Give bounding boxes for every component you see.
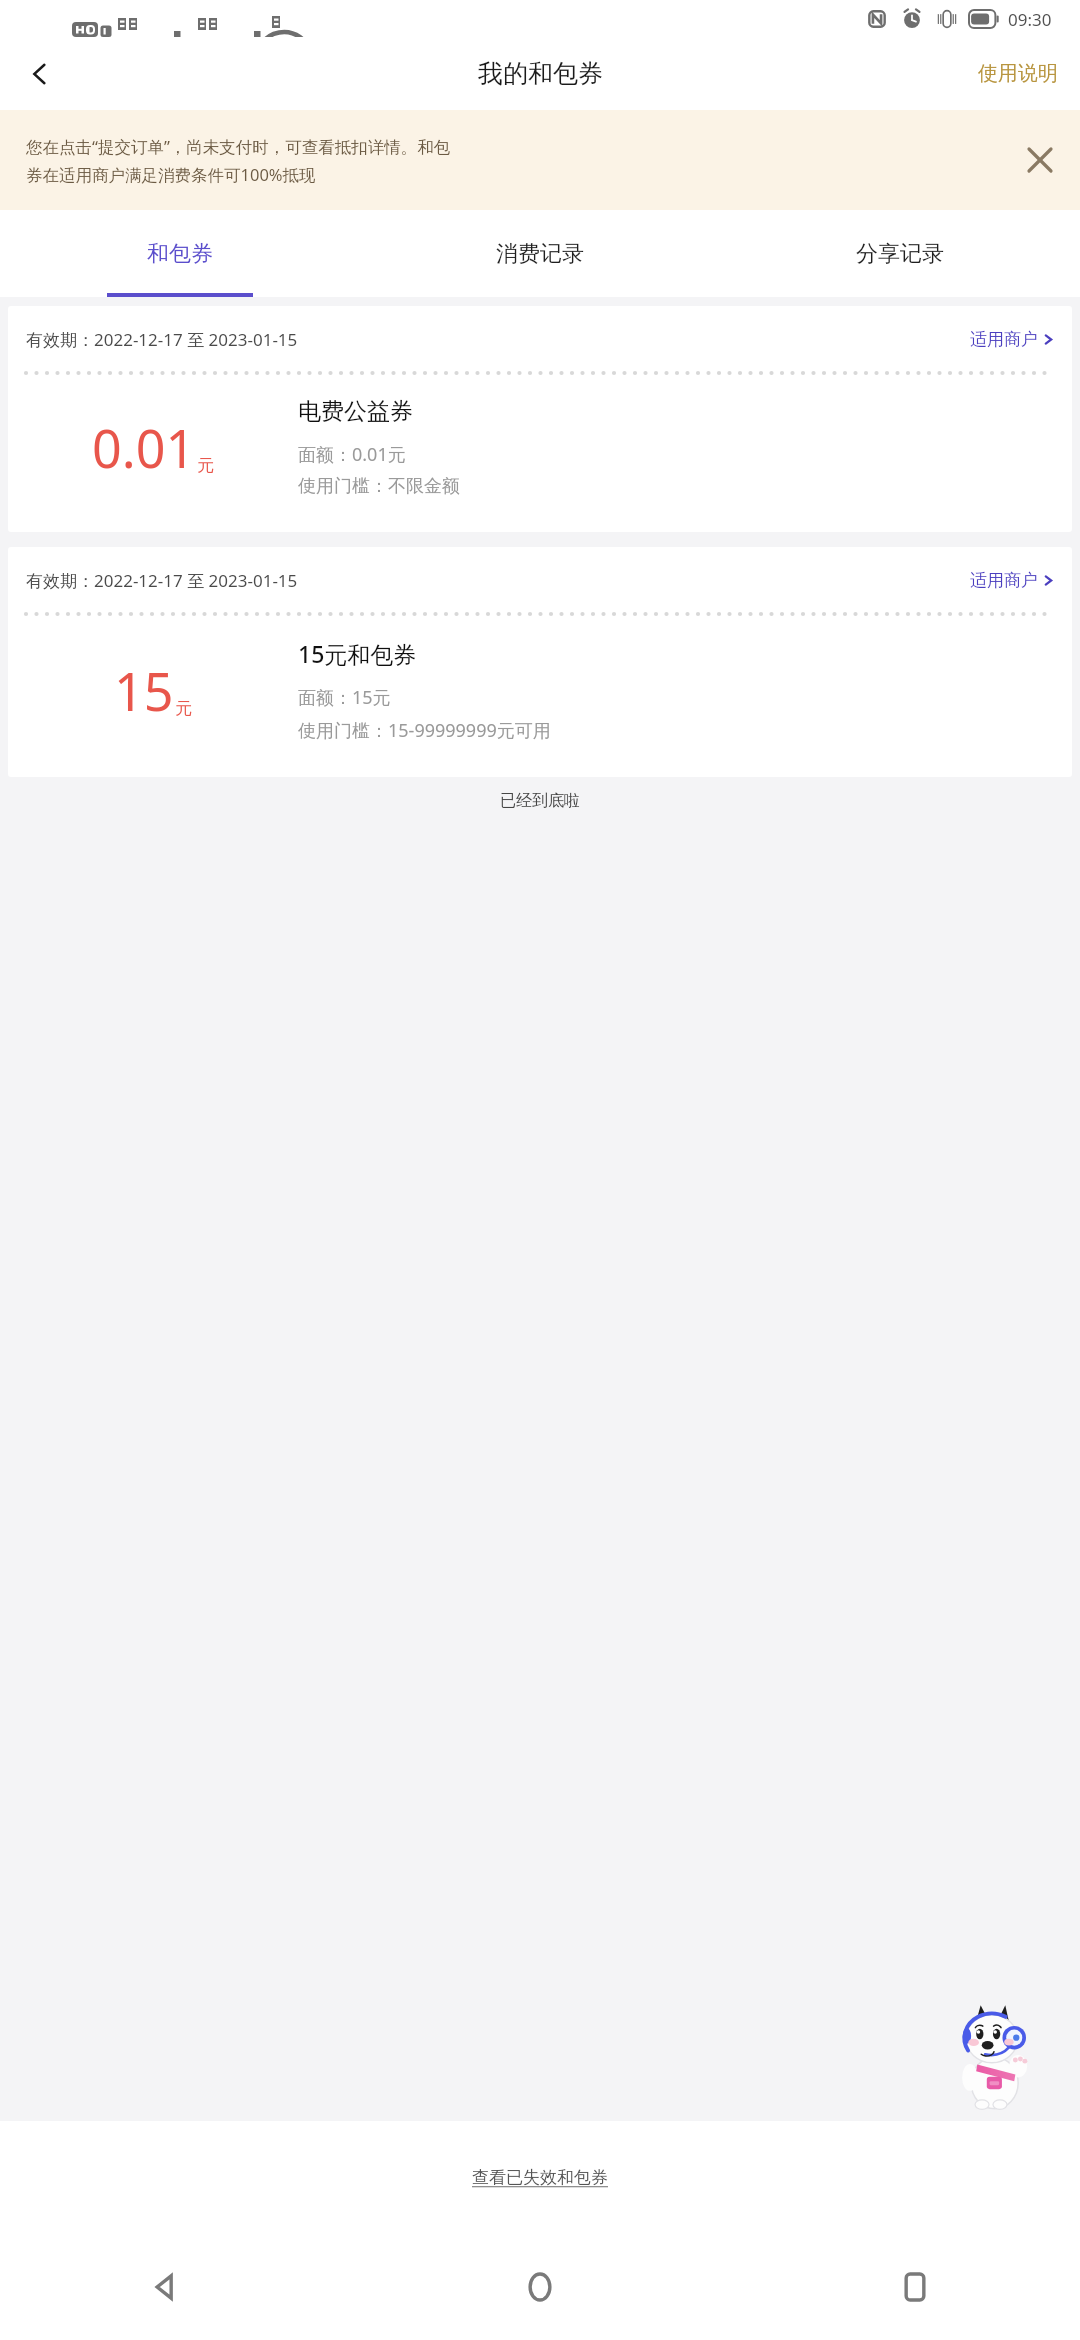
button[interactable]: 主页 (505, 2252, 575, 2322)
staticText: 消费记录 (496, 240, 584, 268)
staticText: 元 (197, 455, 214, 476)
staticText: 已经到底啦 (0, 791, 1080, 811)
staticText: 面额：0.01元 (298, 442, 406, 467)
button[interactable]: 使用说明 (956, 49, 1080, 98)
button[interactable]: 关闭 (1016, 136, 1064, 184)
staticText: 分享记录 (856, 240, 944, 268)
staticText: 我的和包券 (478, 58, 603, 89)
button[interactable]: 适用商户 (970, 570, 1054, 591)
button[interactable]: 返回 (12, 46, 68, 102)
button[interactable]: 消费记录 (360, 210, 720, 297)
button[interactable]: 适用商户 (970, 329, 1054, 350)
staticText: 适用商户 (970, 329, 1038, 350)
button[interactable]: 和包券 (0, 210, 360, 297)
button[interactable]: 返回 (130, 2252, 200, 2322)
staticText: 券在适用商户满足消费条件可100%抵现 (26, 163, 316, 186)
staticText: 电费公益券 (298, 397, 413, 426)
staticText: 使用说明 (978, 61, 1058, 86)
staticText: 使用门槛：不限金额 (298, 475, 460, 498)
staticText: 和包券 (147, 240, 213, 268)
staticText: 元 (175, 698, 192, 719)
button[interactable]: 有效期：2022-12-17 至 2023-01-15 (8, 306, 1072, 532)
staticText: 15 (114, 655, 174, 726)
staticText: 查看已失效和包券 (472, 2167, 608, 2188)
staticText: 使用门槛：15-99999999元可用 (298, 718, 551, 743)
button[interactable]: 最近任务 (880, 2252, 950, 2322)
staticText: 适用商户 (970, 570, 1038, 591)
staticText: 0.01 (92, 412, 196, 483)
staticText: 15元和包券 (298, 638, 417, 669)
staticText: 您在点击“提交订单”，尚未支付时，可查看抵扣详情。和包 (26, 135, 451, 158)
button[interactable]: 有效期：2022-12-17 至 2023-01-15 (8, 547, 1072, 777)
button[interactable]: 分享记录 (720, 210, 1080, 297)
button[interactable]: 查看已失效和包券 (460, 2161, 620, 2194)
staticText: 有效期：2022-12-17 至 2023-01-15 (26, 569, 298, 592)
staticText: 面额：15元 (298, 685, 391, 710)
staticText: 09:30 (1008, 8, 1052, 31)
staticText: 有效期：2022-12-17 至 2023-01-15 (26, 328, 298, 351)
